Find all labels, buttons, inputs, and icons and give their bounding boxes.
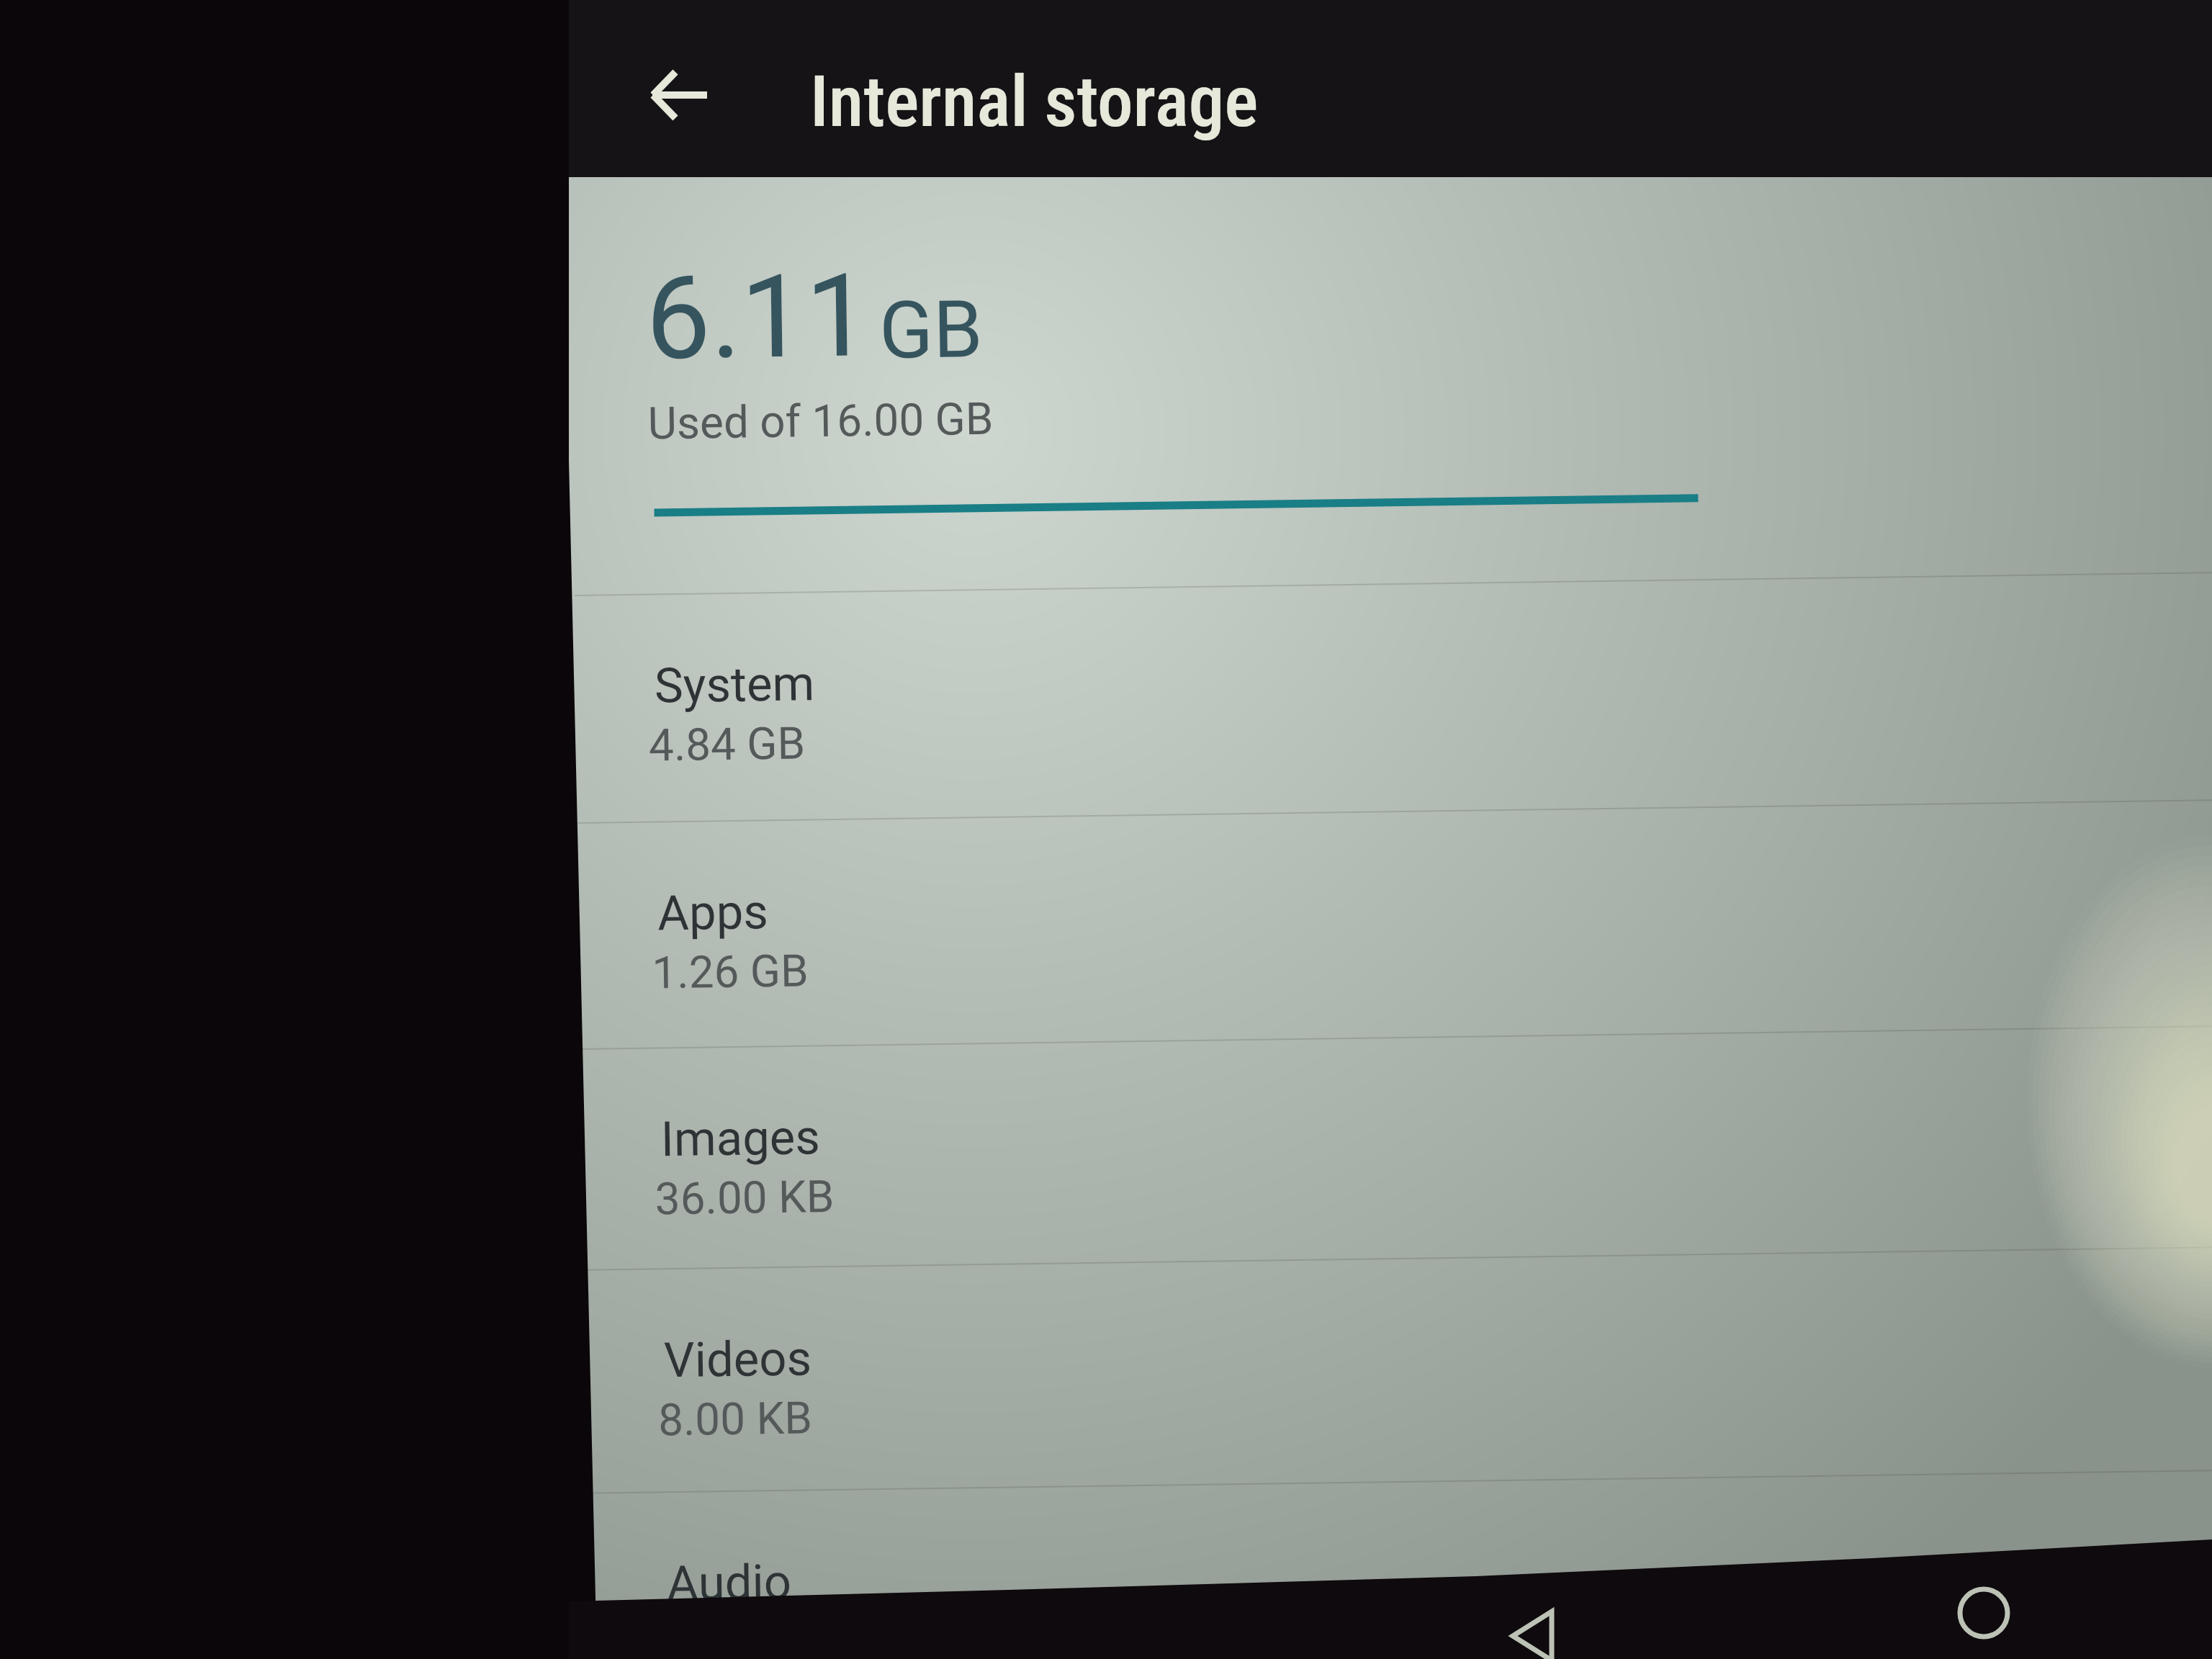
button[interactable]: Back	[622, 37, 737, 153]
button[interactable]: System	[575, 573, 2212, 819]
staticText: Apps	[657, 884, 769, 942]
staticText: 36.00 KB	[655, 1170, 835, 1225]
staticText: Internal storage	[810, 60, 1259, 143]
button[interactable]: Audio	[587, 1471, 2212, 1659]
staticText: 6.11	[645, 249, 871, 387]
staticText: 4.84 GB	[648, 717, 806, 772]
staticText: 1.26 GB	[652, 944, 809, 999]
button[interactable]: Videos	[584, 1248, 2212, 1494]
button[interactable]: Apps	[578, 801, 2212, 1047]
staticText: Videos	[663, 1330, 813, 1389]
staticText: Images	[660, 1109, 821, 1168]
staticText: Audio	[667, 1554, 792, 1612]
staticText: GB	[879, 283, 984, 377]
staticText: System	[654, 655, 815, 715]
staticText: 8.00 KB	[658, 1392, 813, 1446]
staticText: Used of 16.00 GB	[648, 392, 994, 450]
button[interactable]: Images	[581, 1027, 2212, 1273]
